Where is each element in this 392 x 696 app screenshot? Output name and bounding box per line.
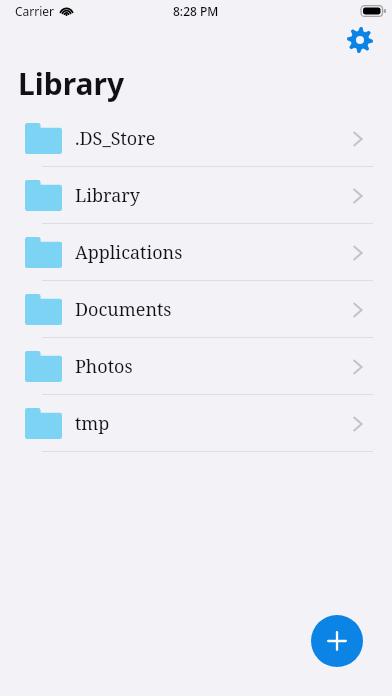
staticText: Library bbox=[75, 183, 140, 208]
button[interactable]: .DS_Store bbox=[0, 110, 392, 167]
button[interactable]: Library bbox=[0, 167, 392, 224]
staticText: Library bbox=[18, 63, 125, 104]
staticText: Photos bbox=[75, 354, 133, 379]
staticText: Applications bbox=[75, 240, 183, 265]
button[interactable]: Add bbox=[311, 615, 363, 667]
button[interactable]: tmp bbox=[0, 395, 392, 452]
staticText: Carrier bbox=[15, 3, 55, 19]
staticText: tmp bbox=[75, 411, 110, 436]
staticText: 8:28 PM bbox=[173, 3, 219, 19]
button[interactable]: Applications bbox=[0, 224, 392, 281]
button[interactable]: Documents bbox=[0, 281, 392, 338]
staticText: Documents bbox=[75, 297, 172, 322]
button[interactable]: Settings bbox=[343, 23, 377, 57]
button[interactable]: Photos bbox=[0, 338, 392, 395]
staticText: .DS_Store bbox=[75, 126, 156, 151]
